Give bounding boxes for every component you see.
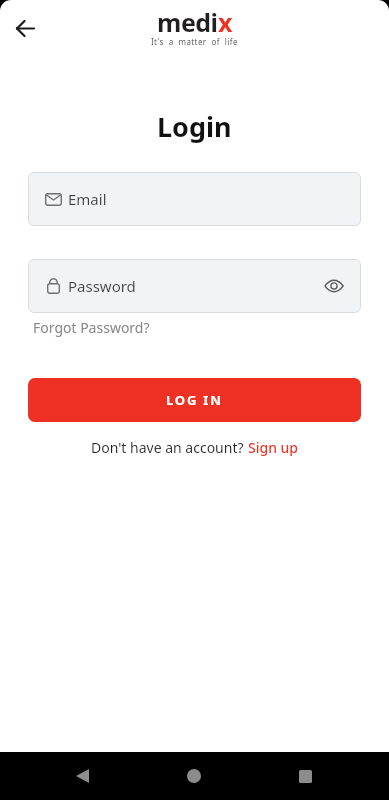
staticText: medi (157, 5, 218, 39)
button[interactable]: Password (28, 259, 361, 313)
button[interactable] (289, 760, 321, 792)
button[interactable] (178, 760, 210, 792)
button[interactable]: LOG IN (28, 378, 361, 422)
staticText: Don't have an account? (91, 438, 248, 457)
button[interactable]: Forgot Password? (33, 318, 150, 337)
staticText: x (218, 5, 233, 39)
staticText: Email (68, 189, 107, 209)
button[interactable]: Email (28, 172, 361, 226)
button[interactable] (9, 12, 41, 44)
button[interactable] (66, 760, 98, 792)
staticText: Sign up (248, 438, 299, 457)
button[interactable]: Sign up (248, 438, 299, 457)
staticText: Password (68, 276, 136, 296)
staticText: LOG IN (166, 391, 223, 409)
staticText: It's a matter of life (151, 36, 238, 47)
staticText: Forgot Password? (33, 318, 150, 337)
staticText: Login (157, 108, 232, 145)
